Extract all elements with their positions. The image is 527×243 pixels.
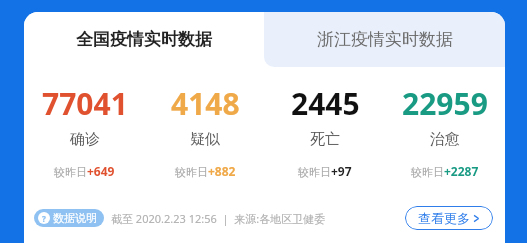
staticText: 较昨日+649 — [54, 163, 115, 179]
staticText: 2445 — [291, 83, 360, 124]
staticText: 确诊 — [70, 130, 100, 149]
button[interactable]: 4148 — [145, 83, 265, 179]
button[interactable]: 全国疫情实时数据 — [24, 12, 264, 67]
staticText: ? — [42, 213, 46, 224]
staticText: 较昨日+2287 — [411, 163, 479, 179]
button[interactable]: 查看更多 — [405, 206, 493, 230]
button[interactable]: ? — [34, 209, 104, 227]
staticText: 查看更多 — [418, 210, 470, 226]
staticText: 疑似 — [190, 130, 220, 149]
staticText: 全国疫情实时数据 — [76, 29, 212, 50]
staticText: 浙江疫情实时数据 — [317, 29, 453, 50]
staticText: 22959 — [402, 83, 488, 124]
other: View more — [473, 215, 480, 222]
staticText: 较昨日+97 — [298, 163, 352, 179]
staticText: 治愈 — [430, 130, 460, 149]
staticText: 4148 — [171, 83, 240, 124]
button[interactable]: 77041 — [24, 83, 145, 179]
staticText: 较昨日+882 — [175, 163, 236, 179]
button[interactable]: 浙江疫情实时数据 — [264, 12, 505, 67]
button[interactable]: 22959 — [385, 83, 505, 179]
staticText: 死亡 — [310, 130, 340, 149]
button[interactable]: 2445 — [265, 83, 385, 179]
staticText: 截至 2020.2.23 12:56 | 来源:各地区卫健委 — [111, 211, 326, 226]
staticText: 77041 — [42, 83, 128, 124]
staticText: 数据说明 — [53, 211, 97, 225]
